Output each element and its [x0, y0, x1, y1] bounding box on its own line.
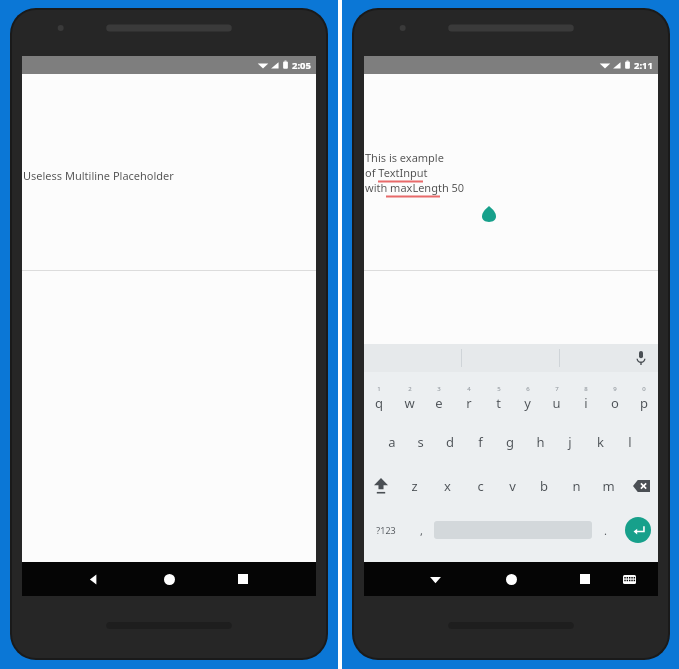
button[interactable]: b [528, 464, 560, 508]
staticText: 0 [642, 385, 646, 393]
button[interactable]: g [495, 420, 525, 464]
button[interactable]: v [496, 464, 528, 508]
staticText: n [572, 477, 581, 495]
staticText: 9 [613, 385, 617, 393]
button[interactable]: x [431, 464, 464, 508]
button[interactable]: c [464, 464, 496, 508]
button[interactable]: 5 [484, 376, 513, 420]
button[interactable]: m [592, 464, 624, 508]
staticText: k [597, 433, 604, 451]
button[interactable]: 1 [364, 376, 394, 420]
button[interactable]: j [555, 420, 585, 464]
staticText: Useless Multiline Placeholder [23, 168, 174, 183]
staticText: 5 [497, 385, 501, 393]
staticText: This is example [365, 150, 444, 165]
button[interactable]: . [592, 508, 618, 552]
staticText: v [509, 477, 516, 495]
staticText: z [411, 477, 418, 495]
staticText: c [477, 477, 484, 495]
staticText: p [640, 394, 648, 412]
button[interactable]: , [408, 508, 434, 552]
staticText: ?123 [376, 524, 396, 536]
button[interactable]: Home [152, 562, 186, 596]
button[interactable]: 4 [454, 376, 484, 420]
staticText: j [568, 433, 572, 451]
staticText: h [536, 433, 545, 451]
staticText: t [496, 394, 501, 412]
button[interactable]: k [585, 420, 615, 464]
staticText: q [375, 394, 383, 412]
button[interactable]: s [406, 420, 435, 464]
button[interactable]: z [398, 464, 431, 508]
button[interactable]: Home [494, 562, 528, 596]
button[interactable]: Backspace [624, 464, 658, 508]
button[interactable]: Shift [364, 464, 398, 508]
staticText: y [524, 394, 531, 412]
button[interactable]: 2 [394, 376, 424, 420]
staticText: d [446, 433, 454, 451]
staticText: , [420, 523, 423, 538]
button[interactable]: Back [418, 562, 452, 596]
button[interactable]: a [377, 420, 406, 464]
button[interactable]: Back [76, 562, 110, 596]
staticText: w [404, 394, 415, 412]
button[interactable]: Recents [568, 562, 602, 596]
button[interactable]: 7 [542, 376, 571, 420]
staticText: 2:11 [634, 59, 653, 72]
button[interactable]: Switch keyboard [612, 562, 646, 596]
staticText: s [417, 433, 424, 451]
button[interactable]: l [615, 420, 645, 464]
button[interactable]: 0 [629, 376, 658, 420]
staticText: u [552, 394, 561, 412]
staticText: m [602, 477, 615, 495]
button[interactable]: Enter [618, 508, 658, 552]
staticText: 2 [408, 385, 412, 393]
staticText: 8 [584, 385, 588, 393]
button[interactable]: h [525, 420, 555, 464]
button[interactable]: Recents [226, 562, 260, 596]
button[interactable]: 3 [424, 376, 454, 420]
button[interactable]: d [435, 420, 465, 464]
staticText: of TextInput [365, 165, 428, 180]
staticText: 1 [377, 385, 381, 393]
button[interactable]: n [560, 464, 592, 508]
staticText: b [540, 477, 548, 495]
button[interactable]: f [465, 420, 495, 464]
staticText: 2:05 [292, 59, 311, 72]
staticText: a [388, 433, 396, 451]
staticText: l [628, 433, 632, 451]
button[interactable]: 6 [513, 376, 542, 420]
button[interactable]: 9 [600, 376, 629, 420]
staticText: with maxLength 50 [365, 180, 465, 195]
staticText: x [444, 477, 451, 495]
staticText: f [478, 433, 483, 451]
staticText: 3 [437, 385, 441, 393]
staticText: 6 [526, 385, 530, 393]
other: Voice input [636, 351, 646, 365]
button[interactable]: ?123 [364, 508, 408, 552]
staticText: o [611, 394, 619, 412]
staticText: g [506, 433, 514, 451]
staticText: e [435, 394, 443, 412]
staticText: r [466, 394, 472, 412]
staticText: i [584, 394, 588, 412]
staticText: 4 [467, 385, 471, 393]
staticText: 7 [555, 385, 559, 393]
button[interactable]: 8 [571, 376, 600, 420]
staticText: . [604, 523, 607, 538]
